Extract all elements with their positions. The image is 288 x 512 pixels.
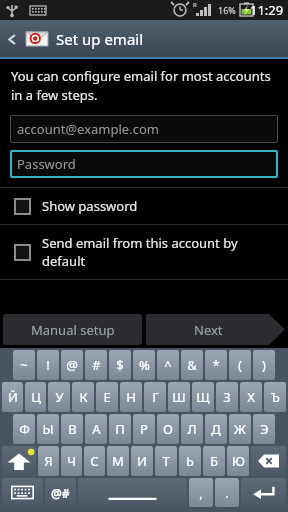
button[interactable]: ^	[157, 350, 179, 380]
staticText: Ж	[234, 420, 246, 438]
staticText: Й	[8, 388, 18, 406]
button[interactable]: У	[48, 382, 70, 412]
staticText: Р	[140, 420, 148, 438]
button[interactable]: П	[109, 414, 131, 444]
button[interactable]: Й	[2, 382, 23, 412]
button[interactable]: М	[107, 446, 129, 476]
button[interactable]: .	[215, 478, 239, 507]
staticText: А	[92, 420, 101, 438]
button[interactable]: Р	[133, 414, 155, 444]
button[interactable]: Send email from this account by default	[0, 225, 288, 279]
staticText: К	[79, 388, 88, 406]
button[interactable]: account@example.com	[10, 115, 278, 143]
staticText: !	[46, 356, 50, 374]
button[interactable]: Ч	[61, 446, 82, 476]
staticText: П	[115, 420, 125, 438]
button[interactable]: #	[85, 350, 107, 380]
button[interactable]: %	[133, 350, 155, 380]
staticText: &	[187, 356, 197, 374]
staticText: ~	[20, 356, 28, 374]
staticText: У	[55, 388, 64, 406]
button[interactable]: Щ	[192, 382, 214, 412]
button[interactable]: К	[72, 382, 94, 412]
button[interactable]: $	[109, 350, 131, 380]
button[interactable]: Next	[146, 314, 285, 345]
button[interactable]: Ь	[179, 446, 201, 476]
button[interactable]: Ф	[13, 414, 35, 444]
button[interactable]: @	[61, 350, 83, 380]
staticText: Э	[260, 420, 269, 438]
staticText: Set up email	[56, 29, 144, 49]
staticText: .	[225, 484, 229, 502]
staticText: Manual setup	[31, 321, 115, 339]
button[interactable]: О	[157, 414, 179, 444]
staticText: О	[163, 420, 173, 438]
button[interactable]: Х	[240, 382, 262, 412]
staticText: И	[137, 452, 147, 470]
staticText: #	[92, 356, 101, 374]
button[interactable]: Keyboard settings	[2, 478, 43, 507]
button[interactable]: Navigate up	[0, 20, 54, 57]
staticText: (	[238, 356, 242, 374]
button[interactable]: И	[131, 446, 153, 476]
button[interactable]: Ъ	[264, 382, 286, 412]
staticText: М	[112, 452, 124, 470]
staticText: З	[223, 388, 231, 406]
button[interactable]: Н	[120, 382, 142, 412]
button[interactable]: А	[85, 414, 107, 444]
button[interactable]: Б	[203, 446, 225, 476]
button[interactable]: Ц	[25, 382, 46, 412]
staticText: R	[193, 1, 197, 9]
staticText: 16%	[218, 4, 236, 16]
button[interactable]: С	[84, 446, 105, 476]
staticText: Т	[162, 452, 170, 470]
button[interactable]: Space	[78, 478, 187, 507]
button[interactable]: Т	[155, 446, 177, 476]
button[interactable]: Shift	[2, 446, 36, 476]
button[interactable]: *	[205, 350, 227, 380]
staticText: Х	[247, 388, 255, 406]
staticText: Ф	[19, 420, 30, 438]
button[interactable]: @#	[45, 478, 76, 507]
staticText: ^	[164, 356, 172, 374]
button[interactable]: Ы	[37, 414, 59, 444]
button[interactable]: Л	[181, 414, 203, 444]
button[interactable]: З	[216, 382, 238, 412]
button[interactable]: (	[229, 350, 251, 380]
staticText: 11:29	[250, 1, 284, 19]
staticText: Я	[44, 452, 53, 470]
button[interactable]: Я	[38, 446, 59, 476]
staticText: Ш	[172, 388, 186, 406]
button[interactable]: Е	[96, 382, 118, 412]
staticText: $	[116, 356, 124, 374]
button[interactable]: Enter	[241, 478, 286, 507]
button[interactable]: Manual setup	[3, 314, 142, 345]
staticText: Next	[194, 321, 223, 339]
button[interactable]: )	[253, 350, 275, 380]
button[interactable]: Э	[253, 414, 275, 444]
button[interactable]: В	[61, 414, 83, 444]
button[interactable]: &	[181, 350, 203, 380]
button[interactable]: ~	[13, 350, 35, 380]
button[interactable]: Ш	[168, 382, 190, 412]
staticText: @	[66, 356, 78, 374]
button[interactable]: Д	[205, 414, 227, 444]
staticText: Ц	[31, 388, 41, 406]
staticText: ,	[199, 484, 203, 502]
button[interactable]: ,	[189, 478, 213, 507]
staticText: Щ	[196, 388, 210, 406]
staticText: Password	[17, 155, 76, 173]
staticText: Send email from this account by default	[42, 234, 238, 270]
button[interactable]: !	[37, 350, 59, 380]
button[interactable]: Password	[10, 150, 278, 178]
button[interactable]: Ж	[229, 414, 251, 444]
staticText: account@example.com	[17, 120, 159, 138]
button[interactable]: Backspace	[251, 446, 286, 476]
button[interactable]: Ю	[227, 446, 249, 476]
button[interactable]: Г	[144, 382, 166, 412]
button[interactable]: Show password	[0, 188, 288, 224]
staticText: Б	[210, 452, 218, 470]
staticText: %	[139, 356, 150, 374]
staticText: You can configure email for most account…	[11, 67, 271, 104]
staticText: Е	[103, 388, 111, 406]
